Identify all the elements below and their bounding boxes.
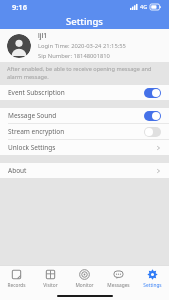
button[interactable]: Stream encryption xyxy=(0,124,169,139)
staticText: Settings xyxy=(143,282,162,289)
staticText: 9:16 xyxy=(12,2,27,12)
staticText: ljl1 xyxy=(38,31,47,40)
button[interactable]: Visitor xyxy=(33,266,67,292)
button[interactable]: Unlock Settings xyxy=(0,140,169,155)
staticText: Monitor xyxy=(75,282,94,289)
staticText: About xyxy=(8,166,156,175)
staticText: Sip Number: 18148001810 xyxy=(38,52,110,60)
staticText: After enabled, be able to receive openin… xyxy=(7,65,162,81)
staticText: Stream encryption xyxy=(8,127,144,136)
staticText: 4G xyxy=(140,3,148,10)
button[interactable]: ljl1 xyxy=(0,29,169,62)
staticText: Event Subscription xyxy=(8,88,144,97)
button[interactable]: About xyxy=(0,163,169,178)
staticText: Message Sound xyxy=(8,111,144,120)
staticText: Records xyxy=(7,282,26,289)
button[interactable]: Messages xyxy=(101,266,135,292)
staticText: Messages xyxy=(107,282,130,289)
button[interactable]: Message Sound xyxy=(0,108,169,123)
button[interactable]: Records xyxy=(0,266,33,292)
staticText: Unlock Settings xyxy=(8,143,156,152)
button[interactable]: Toggle on xyxy=(144,111,161,121)
staticText: Visitor xyxy=(43,282,58,289)
staticText: Login Time: 2020-03-24 21:15:55 xyxy=(38,42,126,50)
button[interactable]: Toggle off xyxy=(144,127,161,137)
button[interactable]: Toggle on xyxy=(144,88,161,98)
button[interactable]: Monitor xyxy=(67,266,101,292)
button[interactable]: Event Subscription xyxy=(0,85,169,100)
staticText: Settings xyxy=(66,15,103,28)
button[interactable]: Settings xyxy=(135,266,169,292)
